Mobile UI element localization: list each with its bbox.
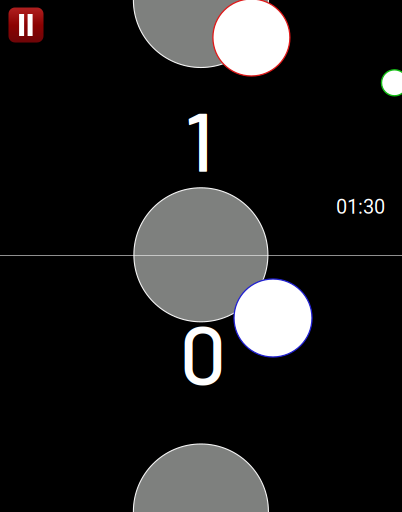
button[interactable]: Pause (8, 7, 43, 42)
staticText: 1 (184, 89, 213, 188)
staticText: 0 (179, 302, 226, 402)
staticText: 01:30 (336, 195, 385, 219)
